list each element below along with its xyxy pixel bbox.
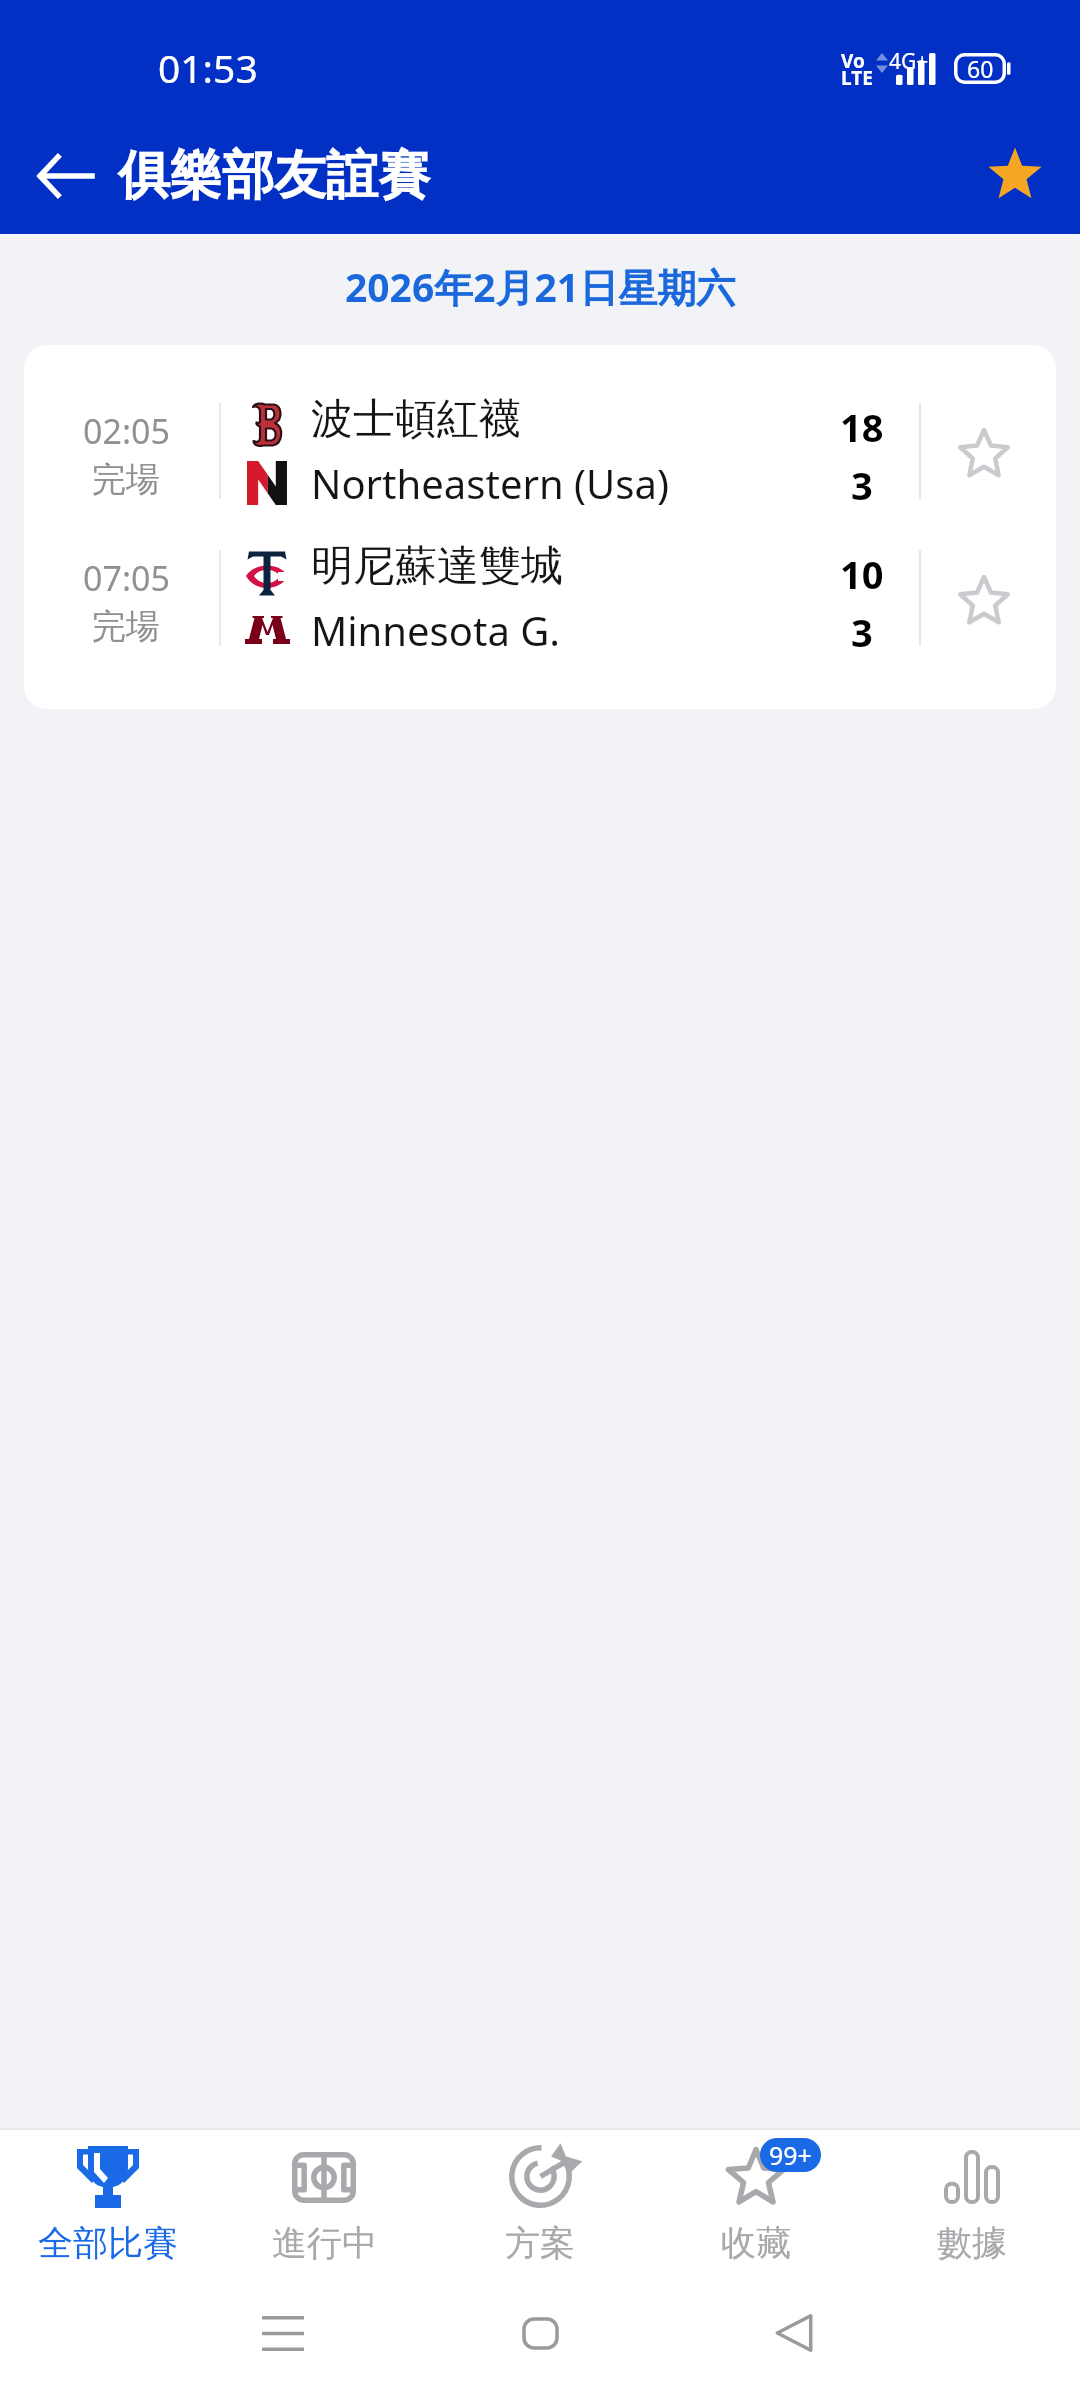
- button[interactable]: Add to favourites: [948, 415, 1020, 487]
- staticText: 01:53: [158, 41, 258, 94]
- staticText: 4G+: [889, 47, 929, 76]
- button[interactable]: Recents: [238, 2290, 328, 2376]
- button[interactable]: 全部比賽: [0, 2128, 216, 2290]
- staticText: 方案: [505, 2221, 575, 2265]
- staticText: 2026年2月21日星期六: [345, 260, 736, 313]
- staticText: 10: [840, 548, 884, 600]
- staticText: 3: [851, 459, 873, 511]
- staticText: 完場: [92, 605, 160, 648]
- staticText: 明尼蘇達雙城: [311, 540, 563, 593]
- button[interactable]: 07:05: [24, 524, 1056, 671]
- button[interactable]: 方案: [432, 2128, 648, 2290]
- staticText: 07:05: [83, 555, 170, 601]
- staticText: 波士頓紅襪: [311, 393, 521, 446]
- staticText: 99+: [769, 2138, 812, 2172]
- staticText: Minnesota G.: [311, 603, 561, 657]
- staticText: LTE: [841, 65, 873, 91]
- button[interactable]: 進行中: [216, 2128, 432, 2290]
- staticText: 60: [967, 53, 994, 84]
- button[interactable]: 02:05: [24, 377, 1056, 524]
- button[interactable]: 99+: [648, 2128, 864, 2290]
- staticText: 3: [851, 606, 873, 658]
- button[interactable]: Home: [495, 2290, 585, 2376]
- staticText: 數據: [937, 2221, 1007, 2265]
- button[interactable]: Add to favourites: [948, 562, 1020, 634]
- staticText: 收藏: [721, 2221, 791, 2265]
- button[interactable]: 數據: [864, 2128, 1080, 2290]
- staticText: Vo: [841, 48, 865, 74]
- staticText: 02:05: [83, 408, 170, 454]
- staticText: 進行中: [272, 2221, 377, 2265]
- button[interactable]: Back: [749, 2290, 839, 2376]
- staticText: Northeastern (Usa): [311, 456, 669, 510]
- staticText: 俱樂部友誼賽: [118, 143, 430, 209]
- staticText: 18: [840, 401, 884, 453]
- staticText: 全部比賽: [38, 2221, 178, 2265]
- staticText: 完場: [92, 458, 160, 501]
- button[interactable]: Back: [20, 131, 110, 221]
- button[interactable]: Favourite: [980, 141, 1050, 211]
